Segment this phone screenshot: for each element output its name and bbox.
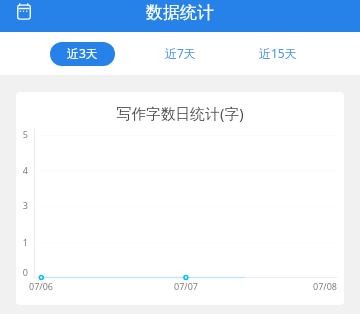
staticText: 5 <box>16 128 28 140</box>
staticText: 近3天 <box>67 45 98 61</box>
button[interactable]: 近7天 <box>131 42 229 66</box>
button[interactable]: 近3天 <box>50 42 115 66</box>
button[interactable]: 近15天 <box>229 42 327 66</box>
button[interactable]: Calendar <box>9 0 39 26</box>
staticText: 近7天 <box>165 45 196 61</box>
staticText: 近15天 <box>259 45 297 61</box>
staticText: 数据统计 <box>146 2 214 23</box>
staticText: 1 <box>16 236 28 248</box>
staticText: 0 <box>16 266 28 278</box>
staticText: 07/07 <box>174 280 198 292</box>
staticText: 写作字数日统计(字) <box>16 103 344 123</box>
staticText: 07/06 <box>29 280 53 292</box>
staticText: 07/08 <box>313 280 337 292</box>
staticText: 3 <box>16 199 28 211</box>
staticText: 4 <box>16 164 28 176</box>
